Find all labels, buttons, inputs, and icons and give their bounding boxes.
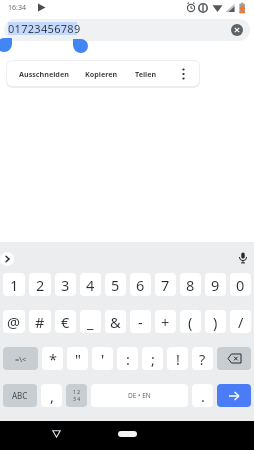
staticText: 5 xyxy=(111,275,120,295)
staticText: , xyxy=(50,386,54,406)
button[interactable]: 01723456789 xyxy=(4,19,250,41)
button[interactable] xyxy=(48,426,64,442)
button[interactable]: Teilen xyxy=(135,61,157,86)
staticText: - xyxy=(138,312,143,332)
staticText: 3 xyxy=(61,275,70,295)
staticText: 6 xyxy=(136,275,145,295)
staticText: ; xyxy=(151,349,155,369)
staticText: " xyxy=(75,349,81,369)
button[interactable]: ) xyxy=(205,310,226,333)
staticText: ) xyxy=(213,312,218,332)
button[interactable]: ' xyxy=(92,347,113,370)
button[interactable]: 8 xyxy=(180,273,201,296)
button[interactable]: ! xyxy=(167,347,188,370)
staticText: 8 xyxy=(186,275,195,295)
staticText: 0 xyxy=(236,275,245,295)
button[interactable]: 3 xyxy=(55,273,76,296)
staticText: _ xyxy=(87,312,94,332)
button[interactable]: ABC xyxy=(3,384,37,407)
button[interactable]: 7 xyxy=(155,273,176,296)
staticText: 01723456789 xyxy=(8,21,81,36)
button[interactable]: & xyxy=(105,310,126,333)
button[interactable]: # xyxy=(29,310,51,333)
button[interactable] xyxy=(217,384,251,407)
staticText: ABC xyxy=(12,390,28,401)
staticText: . xyxy=(201,386,205,406)
button[interactable]: 6 xyxy=(130,273,151,296)
staticText: 16:34 xyxy=(8,3,26,13)
staticText: ' xyxy=(101,349,105,369)
staticText: + xyxy=(161,312,170,332)
button[interactable]: Ausschneiden xyxy=(19,61,69,86)
button[interactable]: * xyxy=(42,347,63,370)
button[interactable]: 4 xyxy=(80,273,101,296)
staticText: # xyxy=(35,312,45,332)
button[interactable] xyxy=(231,24,243,36)
staticText: 9 xyxy=(211,275,220,295)
staticText: 2 xyxy=(36,275,45,295)
staticText: Teilen xyxy=(135,69,157,79)
button[interactable]: ( xyxy=(180,310,201,333)
button[interactable]: Kopieren xyxy=(85,61,118,86)
button[interactable]: @ xyxy=(3,310,25,333)
button[interactable]: 0 xyxy=(230,273,251,296)
staticText: : xyxy=(126,349,130,369)
staticText: * xyxy=(49,349,57,369)
button[interactable] xyxy=(118,431,137,437)
button[interactable]: 1 2 xyxy=(66,384,87,407)
button[interactable]: + xyxy=(155,310,176,333)
button[interactable]: =\< xyxy=(3,347,38,370)
button[interactable]: 5 xyxy=(105,273,126,296)
button[interactable]: _ xyxy=(80,310,101,333)
staticText: Kopieren xyxy=(85,69,118,79)
staticText: DE • EN xyxy=(128,391,151,400)
button[interactable]: , xyxy=(41,384,62,407)
button[interactable]: / xyxy=(230,310,251,333)
button[interactable] xyxy=(236,251,250,265)
staticText: € xyxy=(61,312,70,332)
staticText: 3 4 xyxy=(73,396,81,403)
button[interactable] xyxy=(174,61,192,86)
button[interactable] xyxy=(0,252,14,266)
staticText: Ausschneiden xyxy=(19,69,69,79)
button[interactable]: ; xyxy=(142,347,163,370)
staticText: & xyxy=(110,312,121,332)
button[interactable]: 2 xyxy=(29,273,51,296)
button[interactable]: DE • EN xyxy=(91,384,188,407)
staticText: ? xyxy=(199,349,206,369)
staticText: =\< xyxy=(15,354,27,364)
button[interactable]: 1 xyxy=(3,273,25,296)
staticText: / xyxy=(238,312,244,332)
staticText: 1 xyxy=(10,275,19,295)
staticText: ! xyxy=(176,349,180,369)
button[interactable]: ? xyxy=(192,347,213,370)
staticText: ( xyxy=(188,312,193,332)
button[interactable]: " xyxy=(67,347,88,370)
staticText: 1 2 xyxy=(73,389,81,396)
button[interactable]: € xyxy=(55,310,76,333)
staticText: 4 xyxy=(86,275,95,295)
button[interactable]: - xyxy=(130,310,151,333)
button[interactable]: : xyxy=(117,347,138,370)
staticText: @ xyxy=(7,312,21,332)
button[interactable]: 9 xyxy=(205,273,226,296)
button[interactable]: . xyxy=(192,384,213,407)
button[interactable] xyxy=(217,347,251,370)
staticText: 7 xyxy=(161,275,170,295)
